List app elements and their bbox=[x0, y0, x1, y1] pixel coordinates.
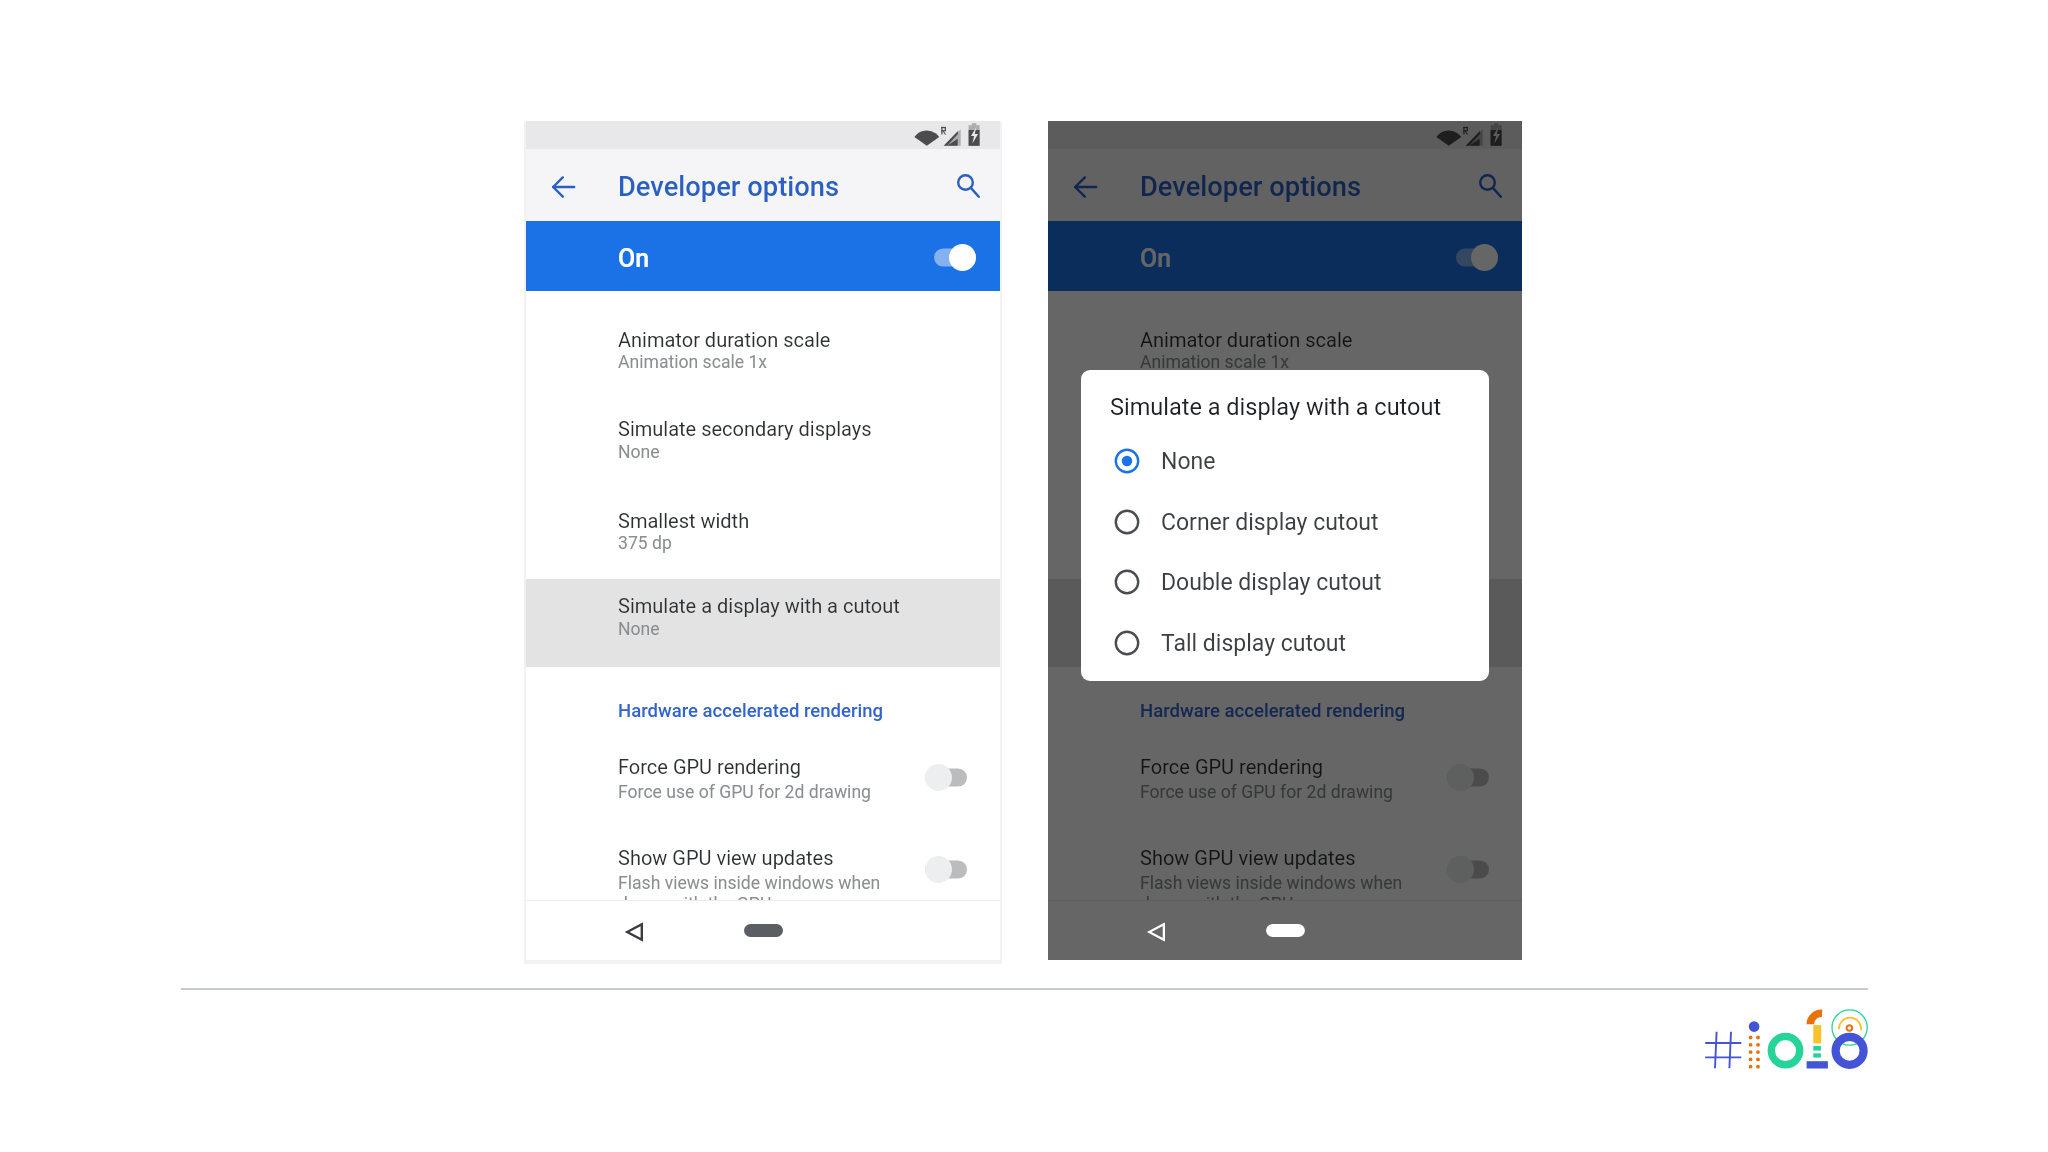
staticText: Animation scale 1x bbox=[618, 352, 768, 373]
staticText: Flash views inside windows when drawn wi… bbox=[1140, 873, 1412, 900]
staticText: None bbox=[1140, 442, 1182, 463]
button[interactable]: Search bbox=[944, 161, 992, 209]
button[interactable]: Simulate secondary displays bbox=[526, 387, 1000, 483]
staticText: Smallest width bbox=[618, 509, 750, 532]
staticText: Force GPU rendering bbox=[618, 755, 802, 778]
staticText: None bbox=[618, 619, 660, 640]
button[interactable]: Simulate secondary displays bbox=[1048, 387, 1522, 483]
staticText: Show GPU view updates bbox=[618, 846, 834, 869]
button[interactable]: Simulate a display with a cutout bbox=[1048, 579, 1522, 667]
staticText: Show GPU view updates bbox=[1140, 846, 1356, 869]
button[interactable]: Tall display cutout bbox=[1081, 619, 1489, 667]
staticText: None bbox=[618, 442, 660, 463]
staticText: On bbox=[1140, 244, 1172, 273]
button[interactable]: Back bbox=[1134, 910, 1178, 954]
button[interactable]: Simulate a display with a cutout bbox=[526, 579, 1000, 667]
staticText: Hardware accelerated rendering bbox=[1140, 700, 1405, 722]
button[interactable]: Back bbox=[1134, 910, 1178, 954]
staticText: Hardware accelerated rendering bbox=[618, 700, 883, 722]
staticText: Simulate a display with a cutout bbox=[1110, 393, 1442, 421]
staticText: Animation scale 1x bbox=[1140, 352, 1290, 373]
staticText: Simulate secondary displays bbox=[618, 417, 872, 440]
button[interactable]: Home bbox=[729, 908, 797, 952]
staticText: Developer options bbox=[618, 171, 840, 203]
button[interactable]: Double display cutout bbox=[1081, 558, 1489, 606]
staticText: Double display cutout bbox=[1161, 569, 1382, 596]
button[interactable]: Smallest width bbox=[1048, 483, 1522, 579]
button[interactable]: Show GPU view updates bbox=[526, 822, 1000, 900]
button[interactable]: On bbox=[526, 221, 1000, 291]
staticText: Flash views inside windows when drawn wi… bbox=[618, 873, 890, 900]
button[interactable]: Animator duration scale bbox=[526, 291, 1000, 387]
staticText: Developer options bbox=[1140, 171, 1362, 203]
button[interactable]: Home bbox=[1251, 908, 1319, 952]
button[interactable]: Hardware accelerated rendering bbox=[1048, 667, 1522, 732]
staticText: Force use of GPU for 2d drawing bbox=[1140, 782, 1393, 803]
button[interactable]: Animator duration scale bbox=[1048, 291, 1522, 387]
button[interactable]: On bbox=[1048, 221, 1522, 291]
staticText: Simulate a display with a cutout bbox=[618, 594, 900, 617]
button[interactable]: Force GPU rendering bbox=[1048, 732, 1522, 822]
staticText: Smallest width bbox=[1140, 509, 1272, 532]
button[interactable]: Navigate up bbox=[1062, 163, 1110, 211]
button[interactable]: Smallest width bbox=[526, 483, 1000, 579]
button[interactable]: Show GPU view updates bbox=[1048, 822, 1522, 900]
staticText: None bbox=[1161, 448, 1216, 475]
button[interactable]: Hardware accelerated rendering bbox=[526, 667, 1000, 732]
staticText: Simulate secondary displays bbox=[1140, 417, 1394, 440]
staticText: 375 dp bbox=[618, 533, 672, 554]
button[interactable]: Home bbox=[1251, 908, 1319, 952]
staticText: Corner display cutout bbox=[1161, 509, 1379, 536]
button[interactable]: None bbox=[1081, 437, 1489, 485]
staticText: Simulate a display with a cutout bbox=[1140, 594, 1422, 617]
button[interactable]: Force GPU rendering bbox=[526, 732, 1000, 822]
staticText: Force GPU rendering bbox=[1140, 755, 1324, 778]
staticText: Animator duration scale bbox=[618, 328, 831, 351]
button[interactable]: Corner display cutout bbox=[1081, 498, 1489, 546]
button[interactable]: Back bbox=[612, 910, 656, 954]
button[interactable]: Search bbox=[1466, 161, 1514, 209]
button[interactable]: Navigate up bbox=[540, 163, 588, 211]
staticText: On bbox=[618, 244, 650, 273]
staticText: Animator duration scale bbox=[1140, 328, 1353, 351]
staticText: None bbox=[1140, 619, 1182, 640]
staticText: Force use of GPU for 2d drawing bbox=[618, 782, 871, 803]
staticText: Tall display cutout bbox=[1161, 630, 1347, 657]
